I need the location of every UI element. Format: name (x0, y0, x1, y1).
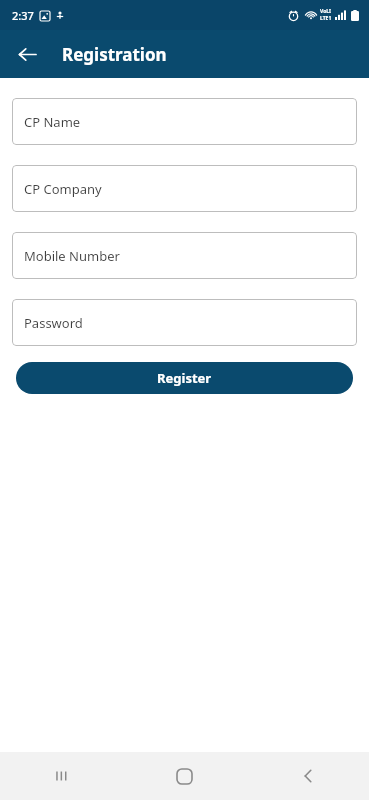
staticText: Mobile Number (24, 247, 120, 265)
button[interactable]: CP Company (12, 165, 357, 212)
staticText: Password (24, 314, 83, 332)
staticText: VoLI (320, 8, 332, 15)
staticText: Register (157, 369, 212, 387)
staticText: 2:37 (12, 8, 34, 23)
staticText: Registration (62, 43, 167, 66)
button[interactable]: Password (12, 299, 357, 346)
staticText: CP Name (24, 113, 81, 131)
button[interactable]: Mobile Number (12, 232, 357, 279)
staticText: CP Company (24, 180, 102, 198)
staticText: LTE1 (320, 15, 332, 22)
button[interactable]: Recents (0, 752, 123, 800)
button[interactable]: Back (246, 752, 369, 800)
button[interactable]: Home (123, 752, 246, 800)
button[interactable]: CP Name (12, 98, 357, 145)
button[interactable]: Back (10, 37, 44, 71)
button[interactable]: Register (16, 362, 353, 394)
